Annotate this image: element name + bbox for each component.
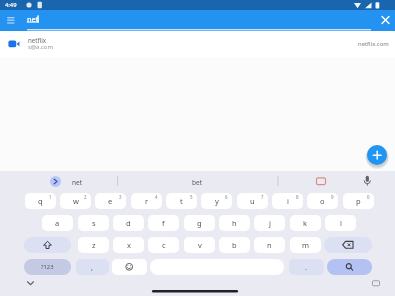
- staticText: 9: [331, 194, 334, 200]
- staticText: 2: [84, 194, 87, 200]
- staticText: o: [320, 196, 325, 206]
- staticText: m: [302, 240, 310, 250]
- button[interactable]: y: [201, 193, 232, 209]
- button[interactable]: [112, 259, 147, 275]
- staticText: p: [356, 196, 361, 206]
- button[interactable]: h: [219, 215, 250, 231]
- staticText: 4: [155, 194, 158, 200]
- button[interactable]: ,: [76, 259, 109, 275]
- button[interactable]: u: [237, 193, 268, 209]
- staticText: 8: [296, 194, 299, 200]
- button[interactable]: n: [254, 237, 285, 253]
- button[interactable]: a: [42, 215, 73, 231]
- staticText: y: [215, 196, 219, 206]
- staticText: x: [127, 240, 131, 250]
- button[interactable]: net: [55, 175, 99, 189]
- staticText: g: [197, 218, 202, 228]
- staticText: 6: [225, 194, 228, 200]
- button[interactable]: o: [307, 193, 338, 209]
- button[interactable]: v: [184, 237, 215, 253]
- staticText: l: [340, 218, 342, 228]
- staticText: ,: [91, 262, 94, 272]
- staticText: 4:49: [5, 1, 17, 9]
- button[interactable]: net: [27, 11, 127, 27]
- staticText: net: [72, 178, 83, 187]
- staticText: z: [92, 240, 96, 250]
- button[interactable]: [50, 176, 61, 187]
- staticText: n: [267, 240, 272, 250]
- staticText: 0: [367, 194, 370, 200]
- button[interactable]: s: [78, 215, 109, 231]
- button[interactable]: w: [60, 193, 91, 209]
- button[interactable]: d: [113, 215, 144, 231]
- staticText: 3: [119, 194, 122, 200]
- button[interactable]: j: [254, 215, 285, 231]
- button[interactable]: m: [290, 237, 321, 253]
- button[interactable]: [327, 259, 372, 275]
- staticText: bet: [192, 178, 203, 187]
- button[interactable]: .: [289, 259, 324, 275]
- button[interactable]: i: [272, 193, 303, 209]
- staticText: f: [162, 218, 165, 228]
- button[interactable]: z: [78, 237, 109, 253]
- staticText: r: [145, 196, 149, 206]
- staticText: q: [38, 196, 43, 206]
- staticText: s@a.com: [28, 43, 53, 51]
- staticText: 5: [190, 194, 193, 200]
- button[interactable]: g: [184, 215, 215, 231]
- staticText: i: [287, 196, 289, 206]
- button[interactable]: x: [113, 237, 144, 253]
- staticText: c: [162, 240, 166, 250]
- staticText: a: [55, 218, 60, 228]
- button[interactable]: p: [343, 193, 374, 209]
- button[interactable]: c: [148, 237, 179, 253]
- staticText: t: [180, 196, 183, 206]
- staticText: u: [250, 196, 255, 206]
- button[interactable]: t: [166, 193, 197, 209]
- button[interactable]: netflix: [0, 31, 395, 57]
- button[interactable]: ?123: [24, 259, 71, 275]
- staticText: ?123: [41, 263, 54, 271]
- staticText: b: [232, 240, 237, 250]
- staticText: d: [126, 218, 131, 228]
- button[interactable]: f: [148, 215, 179, 231]
- staticText: w: [73, 196, 79, 206]
- button[interactable]: l: [325, 215, 356, 231]
- button[interactable]: q: [25, 193, 56, 209]
- staticText: 1: [49, 194, 52, 200]
- button[interactable]: [24, 237, 71, 253]
- staticText: net: [27, 14, 39, 24]
- button[interactable]: b: [219, 237, 250, 253]
- staticText: .: [305, 262, 308, 272]
- button[interactable]: [367, 145, 387, 165]
- staticText: netflix.com: [358, 40, 389, 48]
- button[interactable]: [150, 259, 284, 275]
- staticText: k: [303, 218, 308, 228]
- button[interactable]: r: [131, 193, 162, 209]
- staticText: j: [269, 218, 271, 228]
- staticText: e: [108, 196, 113, 206]
- button[interactable]: [324, 237, 372, 253]
- staticText: s: [92, 218, 96, 228]
- staticText: h: [232, 218, 237, 228]
- button[interactable]: e: [95, 193, 126, 209]
- staticText: netflix: [28, 36, 47, 44]
- button[interactable]: k: [290, 215, 321, 231]
- button[interactable]: bet: [160, 175, 234, 189]
- staticText: 7: [261, 194, 264, 200]
- staticText: v: [198, 240, 202, 250]
